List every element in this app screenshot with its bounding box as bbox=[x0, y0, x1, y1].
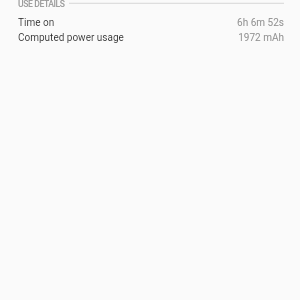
staticText: 1972 mAh bbox=[238, 32, 284, 44]
staticText: 6h 6m 52s bbox=[237, 17, 284, 29]
staticText: Computed power usage bbox=[18, 32, 124, 44]
button[interactable]: Computed power usage bbox=[0, 30, 300, 45]
staticText: Time on bbox=[18, 17, 55, 29]
staticText: USE DETAILS bbox=[18, 0, 65, 8]
button[interactable]: Time on bbox=[0, 15, 300, 30]
